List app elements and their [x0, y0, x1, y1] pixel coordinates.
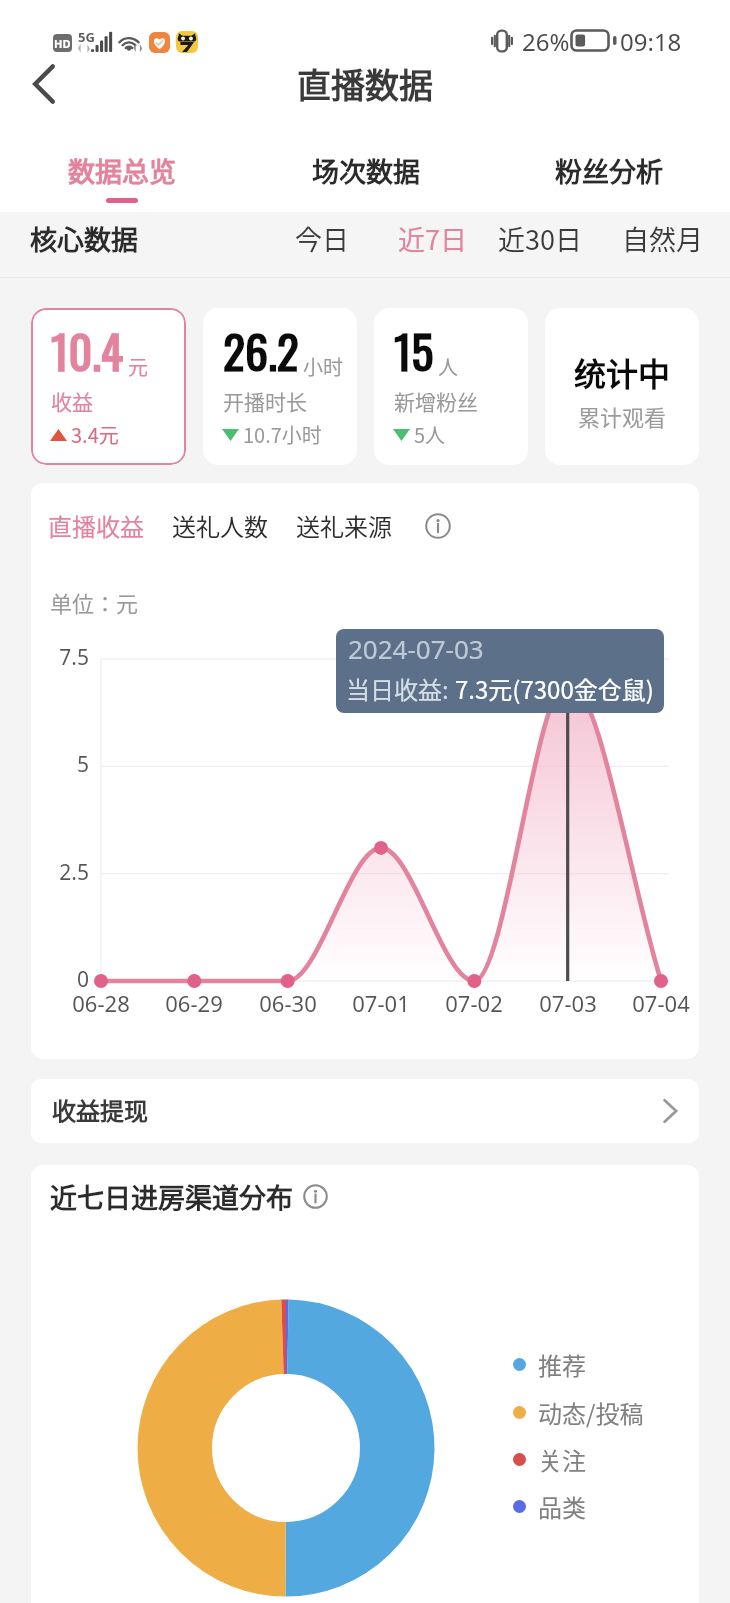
staticText: 近7日 — [398, 219, 467, 258]
button[interactable]: 26.2 — [203, 308, 357, 465]
staticText: 07-01 — [335, 988, 427, 1018]
staticText: 直播收益 — [48, 508, 144, 543]
staticText: 累计观看 — [545, 400, 699, 432]
button[interactable]: 10.4 — [31, 308, 186, 465]
button[interactable]: 数据总览 — [0, 148, 244, 212]
staticText: 近30日 — [498, 219, 582, 258]
staticText: 开播时长 — [223, 386, 307, 416]
staticText: 直播数据 — [0, 59, 730, 108]
staticText: 06-28 — [55, 988, 147, 1018]
staticText: 推荐 — [538, 1347, 586, 1381]
button[interactable]: 关注 — [513, 1442, 586, 1476]
button[interactable]: 送礼人数 — [172, 508, 268, 543]
staticText: 人 — [438, 352, 458, 381]
staticText: 核心数据 — [30, 219, 138, 258]
staticText: 3.4元 — [71, 420, 119, 449]
staticText: 送礼来源 — [296, 508, 392, 543]
staticText: 小时 — [303, 352, 343, 381]
staticText: 数据总览 — [68, 151, 176, 190]
staticText: 品类 — [538, 1489, 586, 1523]
button[interactable]: 直播收益 — [48, 508, 144, 543]
staticText: 粉丝分析 — [555, 151, 663, 190]
button[interactable]: 品类 — [513, 1489, 586, 1523]
staticText: 2024-07-03 — [348, 631, 484, 666]
staticText: 2.5 — [31, 858, 89, 887]
staticText: 场次数据 — [312, 151, 420, 190]
staticText: HD — [54, 36, 71, 51]
staticText: 06-29 — [148, 988, 240, 1018]
staticText: 当日收益: — [346, 671, 455, 706]
staticText: 0 — [31, 965, 89, 994]
button[interactable]: 送礼来源 — [296, 508, 392, 543]
staticText: 07-04 — [615, 988, 699, 1018]
staticText: 新增粉丝 — [394, 386, 478, 416]
button[interactable]: 收益提现 — [31, 1079, 699, 1143]
staticText: 收益提现 — [52, 1092, 148, 1127]
staticText: 5G — [78, 28, 95, 46]
staticText: 06-30 — [242, 988, 334, 1018]
button[interactable]: Info — [422, 510, 454, 542]
staticText: 10.7小时 — [243, 420, 322, 449]
button[interactable]: 15 — [374, 308, 528, 465]
staticText: 5 — [31, 750, 89, 779]
staticText: 自然月 — [622, 219, 703, 258]
staticText: 近七日进房渠道分布 — [50, 1177, 293, 1216]
staticText: 收益 — [51, 386, 93, 416]
staticText: 关注 — [538, 1442, 586, 1476]
staticText: 单位：元 — [50, 586, 139, 618]
staticText: 07-02 — [428, 988, 520, 1018]
staticText: 5人 — [414, 420, 446, 449]
button[interactable]: 自然月 — [622, 219, 703, 258]
button[interactable]: Back — [18, 58, 70, 110]
staticText: 送礼人数 — [172, 508, 268, 543]
staticText: 元 — [128, 352, 148, 381]
staticText: 26.2 — [223, 316, 299, 384]
button[interactable]: 今日 — [295, 219, 349, 258]
button[interactable]: 近7日 — [398, 219, 467, 258]
staticText: 10.4 — [51, 316, 124, 384]
button[interactable]: 近30日 — [498, 219, 582, 258]
staticText: 07-03 — [522, 988, 614, 1018]
staticText: 7.5 — [31, 643, 89, 672]
button[interactable]: 场次数据 — [244, 148, 487, 212]
staticText: 09:18 — [620, 25, 682, 58]
button[interactable]: 粉丝分析 — [487, 148, 730, 212]
button[interactable]: 推荐 — [513, 1347, 586, 1381]
staticText: 26% — [522, 25, 570, 58]
staticText: 7.3元(7300金仓鼠) — [455, 671, 654, 706]
staticText: 动态/投稿 — [538, 1395, 644, 1429]
staticText: 今日 — [295, 219, 349, 258]
button[interactable]: 动态/投稿 — [513, 1395, 644, 1429]
staticText: 15 — [394, 316, 434, 384]
button[interactable]: 统计中 — [545, 308, 699, 465]
staticText: 统计中 — [545, 349, 699, 395]
